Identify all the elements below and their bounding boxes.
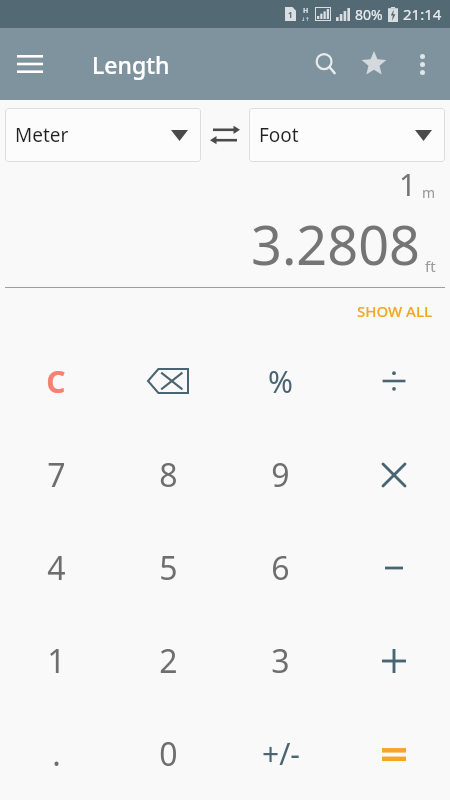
staticText: ft xyxy=(425,256,436,276)
staticText: 5 xyxy=(159,546,178,590)
button[interactable]: Open navigation menu xyxy=(6,40,54,88)
staticText: 1 xyxy=(47,639,66,683)
button[interactable]: 5 xyxy=(112,521,224,614)
staticText: m xyxy=(422,183,436,202)
button[interactable]: Swap units xyxy=(201,108,249,162)
button[interactable]: More options xyxy=(398,40,446,88)
button[interactable]: % xyxy=(224,334,337,428)
button[interactable]: +/- xyxy=(224,707,337,800)
button[interactable]: 4 xyxy=(0,521,112,614)
button[interactable]: Foot xyxy=(249,108,445,162)
button[interactable]: 3 xyxy=(224,614,337,707)
button[interactable]: Favorite xyxy=(350,40,398,88)
staticText: Meter xyxy=(15,122,69,148)
button[interactable]: Equals xyxy=(337,707,450,800)
staticText: 0 xyxy=(159,732,178,776)
button[interactable]: 0 xyxy=(112,707,224,800)
staticText: % xyxy=(268,361,293,402)
button[interactable]: Meter xyxy=(5,108,201,162)
staticText: 3.2808 xyxy=(251,207,420,281)
button[interactable]: . xyxy=(0,707,112,800)
button[interactable]: Backspace xyxy=(112,334,224,428)
staticText: 2 xyxy=(159,639,178,683)
button[interactable]: 9 xyxy=(224,428,337,521)
staticText: . xyxy=(52,732,61,776)
staticText: 1 xyxy=(399,164,417,205)
staticText: +/- xyxy=(262,733,300,774)
button[interactable]: Minus xyxy=(337,521,450,614)
staticText: 80% xyxy=(355,5,383,24)
staticText: C xyxy=(46,361,66,402)
button[interactable]: 8 xyxy=(112,428,224,521)
button[interactable]: SHOW ALL xyxy=(339,293,450,329)
button[interactable]: C xyxy=(0,334,112,428)
staticText: 6 xyxy=(271,546,290,590)
staticText: Foot xyxy=(259,122,299,148)
staticText: 9 xyxy=(271,453,290,497)
button[interactable]: Multiply xyxy=(337,428,450,521)
staticText: H xyxy=(303,6,309,16)
staticText: 1 xyxy=(288,9,293,20)
button[interactable]: 2 xyxy=(112,614,224,707)
staticText: Length xyxy=(92,49,170,80)
staticText: 21:14 xyxy=(403,4,442,24)
button[interactable]: Divide xyxy=(337,334,450,428)
staticText: 8 xyxy=(159,453,178,497)
button[interactable]: 1 xyxy=(0,614,112,707)
staticText: SHOW ALL xyxy=(357,301,432,321)
button[interactable]: Search xyxy=(302,40,350,88)
staticText: 7 xyxy=(47,453,66,497)
button[interactable]: 7 xyxy=(0,428,112,521)
staticText: 4 xyxy=(47,546,66,590)
button[interactable]: Plus xyxy=(337,614,450,707)
button[interactable]: 6 xyxy=(224,521,337,614)
staticText: ↓↑ xyxy=(301,16,310,22)
staticText: 3 xyxy=(271,639,290,683)
